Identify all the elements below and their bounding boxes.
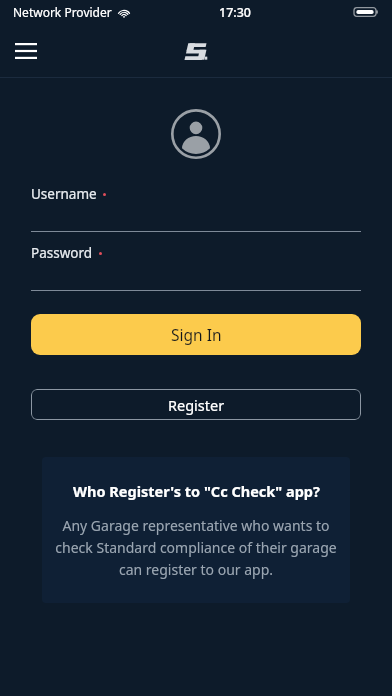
staticText: 17:30 <box>219 4 252 21</box>
button[interactable]: Register <box>31 389 361 420</box>
staticText: Register <box>168 395 225 415</box>
staticText: Network Provider <box>13 4 112 20</box>
button[interactable]: Open navigation menu <box>8 33 44 69</box>
staticText: Who Register's to "Cc Check" app? <box>73 481 320 501</box>
button[interactable]: Sign In <box>31 314 361 355</box>
staticText: Sign In <box>171 324 222 345</box>
staticText: Username <box>31 185 97 203</box>
staticText: Any Garage representative who wants to c… <box>54 516 338 579</box>
staticText: Password <box>31 244 93 262</box>
